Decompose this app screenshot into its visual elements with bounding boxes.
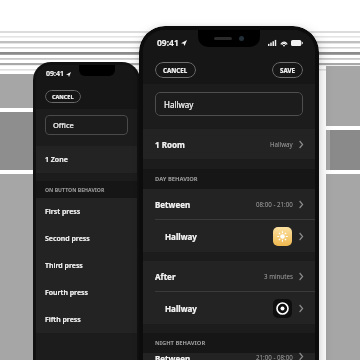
staticText: 3 minutes (264, 272, 293, 280)
button[interactable]: Between (143, 189, 315, 219)
button[interactable]: Between (143, 353, 315, 360)
button[interactable]: SAVE (272, 62, 303, 78)
staticText: CANCEL (52, 93, 74, 100)
staticText: Second press (45, 234, 90, 244)
staticText: 09:41 (157, 37, 179, 49)
button[interactable]: 1 Zone (36, 146, 137, 173)
button[interactable]: Third press (36, 252, 137, 279)
button[interactable]: After (143, 261, 315, 291)
button[interactable]: Hallway (143, 291, 315, 324)
staticText: 08:00 - 21:00 (256, 200, 293, 208)
staticText: CANCEL (163, 66, 188, 74)
staticText: 1 Zone (45, 155, 68, 165)
staticText: 21:00 - 08:00 (256, 353, 293, 360)
button[interactable]: CANCEL (45, 90, 81, 103)
staticText: Between (155, 353, 191, 360)
button[interactable]: Fourth press (36, 279, 137, 306)
staticText: NIGHT BEHAVIOR (155, 339, 206, 347)
staticText: Fourth press (45, 288, 88, 298)
staticText: Hallway (165, 231, 197, 242)
button[interactable]: Office (45, 115, 128, 135)
staticText: 09:41 (46, 69, 64, 79)
button[interactable]: 1 Room (143, 129, 315, 159)
staticText: Fifth press (45, 315, 81, 325)
button[interactable]: Hallway (155, 92, 303, 116)
button[interactable]: Fifth press (36, 306, 137, 333)
button[interactable]: CANCEL (155, 62, 196, 78)
staticText: ON BUTTON BEHAVIOR (45, 186, 105, 193)
button[interactable]: Hallway (143, 219, 315, 252)
other: Brightness on (273, 227, 292, 246)
staticText: Hallway (164, 99, 194, 110)
button[interactable]: Second press (36, 225, 137, 252)
button[interactable]: First press (36, 198, 137, 225)
staticText: After (155, 271, 176, 282)
staticText: Third press (45, 261, 83, 271)
staticText: First press (45, 207, 81, 217)
staticText: Hallway (270, 140, 293, 148)
staticText: DAY BEHAVIOR (155, 175, 198, 183)
staticText: Office (53, 120, 74, 130)
other: Off (273, 299, 292, 318)
staticText: SAVE (280, 66, 295, 74)
staticText: 1 Room (155, 139, 185, 150)
staticText: Between (155, 199, 191, 210)
staticText: Hallway (165, 303, 197, 314)
